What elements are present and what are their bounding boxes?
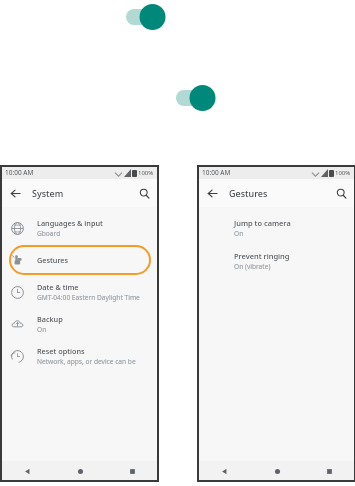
staticText: Network, apps, or device can be reset: [37, 357, 150, 366]
button[interactable]: Back: [198, 461, 251, 481]
button[interactable]: Languages & input: [1, 212, 158, 244]
button[interactable]: Back: [1, 461, 54, 481]
staticText: 100%: [138, 169, 154, 177]
button[interactable]: Backup: [1, 308, 158, 340]
staticText: System: [32, 187, 64, 199]
button[interactable]: [176, 85, 222, 111]
button[interactable]: Gestures: [1, 244, 158, 276]
staticText: Gestures: [229, 187, 268, 199]
staticText: Date & time: [37, 282, 79, 292]
button[interactable]: [126, 4, 172, 30]
button[interactable]: Search: [327, 179, 355, 207]
button[interactable]: Recents: [106, 461, 158, 481]
button[interactable]: Date & time: [1, 276, 158, 308]
staticText: On (vibrate): [234, 262, 271, 271]
button[interactable]: Search: [130, 179, 158, 207]
staticText: Prevent ringing: [234, 251, 290, 261]
button[interactable]: Home: [54, 461, 106, 481]
staticText: Gboard: [37, 229, 61, 238]
staticText: Backup: [37, 314, 63, 324]
button[interactable]: Jump to camera: [198, 216, 355, 240]
staticText: On: [37, 325, 47, 334]
staticText: 10:00 AM: [5, 168, 34, 177]
staticText: 100%: [335, 169, 351, 177]
staticText: Languages & input: [37, 218, 103, 228]
staticText: Gestures: [37, 255, 69, 265]
button[interactable]: Prevent ringing: [198, 249, 355, 273]
staticText: Jump to camera: [234, 218, 291, 228]
button[interactable]: Home: [251, 461, 303, 481]
staticText: On: [234, 229, 244, 238]
staticText: GMT-04:00 Eastern Daylight Time: [37, 293, 140, 302]
staticText: 10:00 AM: [202, 168, 231, 177]
button[interactable]: Back: [198, 179, 226, 207]
button[interactable]: Reset options: [1, 340, 158, 372]
button[interactable]: Back: [1, 179, 29, 207]
staticText: Reset options: [37, 346, 85, 356]
button[interactable]: Recents: [303, 461, 355, 481]
